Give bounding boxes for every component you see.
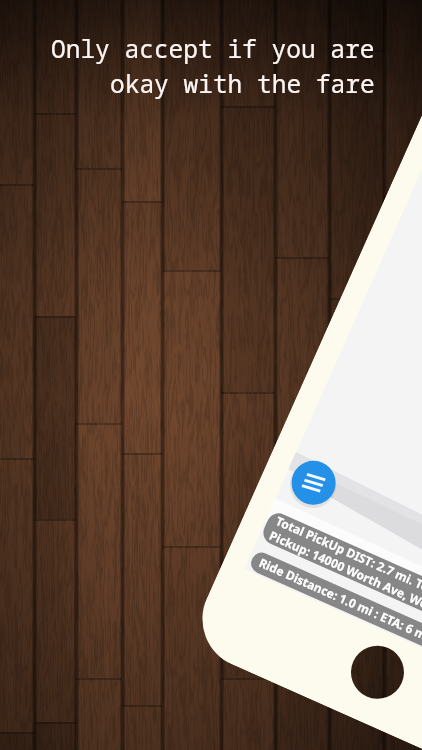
button[interactable]: Only accept if you are okay with the far…	[0, 0, 422, 750]
